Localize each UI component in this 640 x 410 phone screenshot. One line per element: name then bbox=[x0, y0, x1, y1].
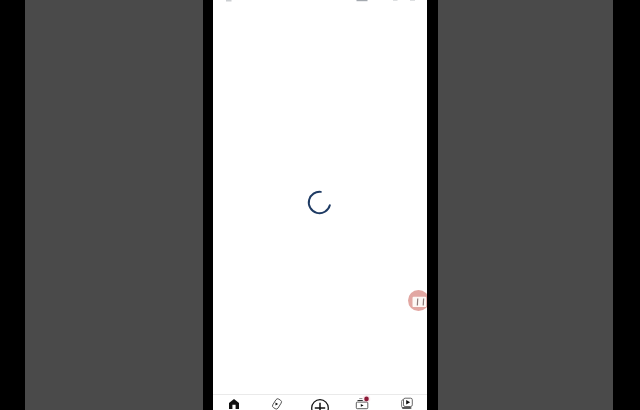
button[interactable]: Assistant shortcut bbox=[408, 290, 427, 311]
button[interactable]: Home bbox=[213, 395, 255, 410]
button[interactable]: Reels bbox=[255, 395, 298, 410]
button[interactable]: Notifications bbox=[341, 395, 384, 410]
button[interactable]: Create bbox=[298, 395, 341, 410]
button[interactable]: Library bbox=[384, 395, 427, 410]
